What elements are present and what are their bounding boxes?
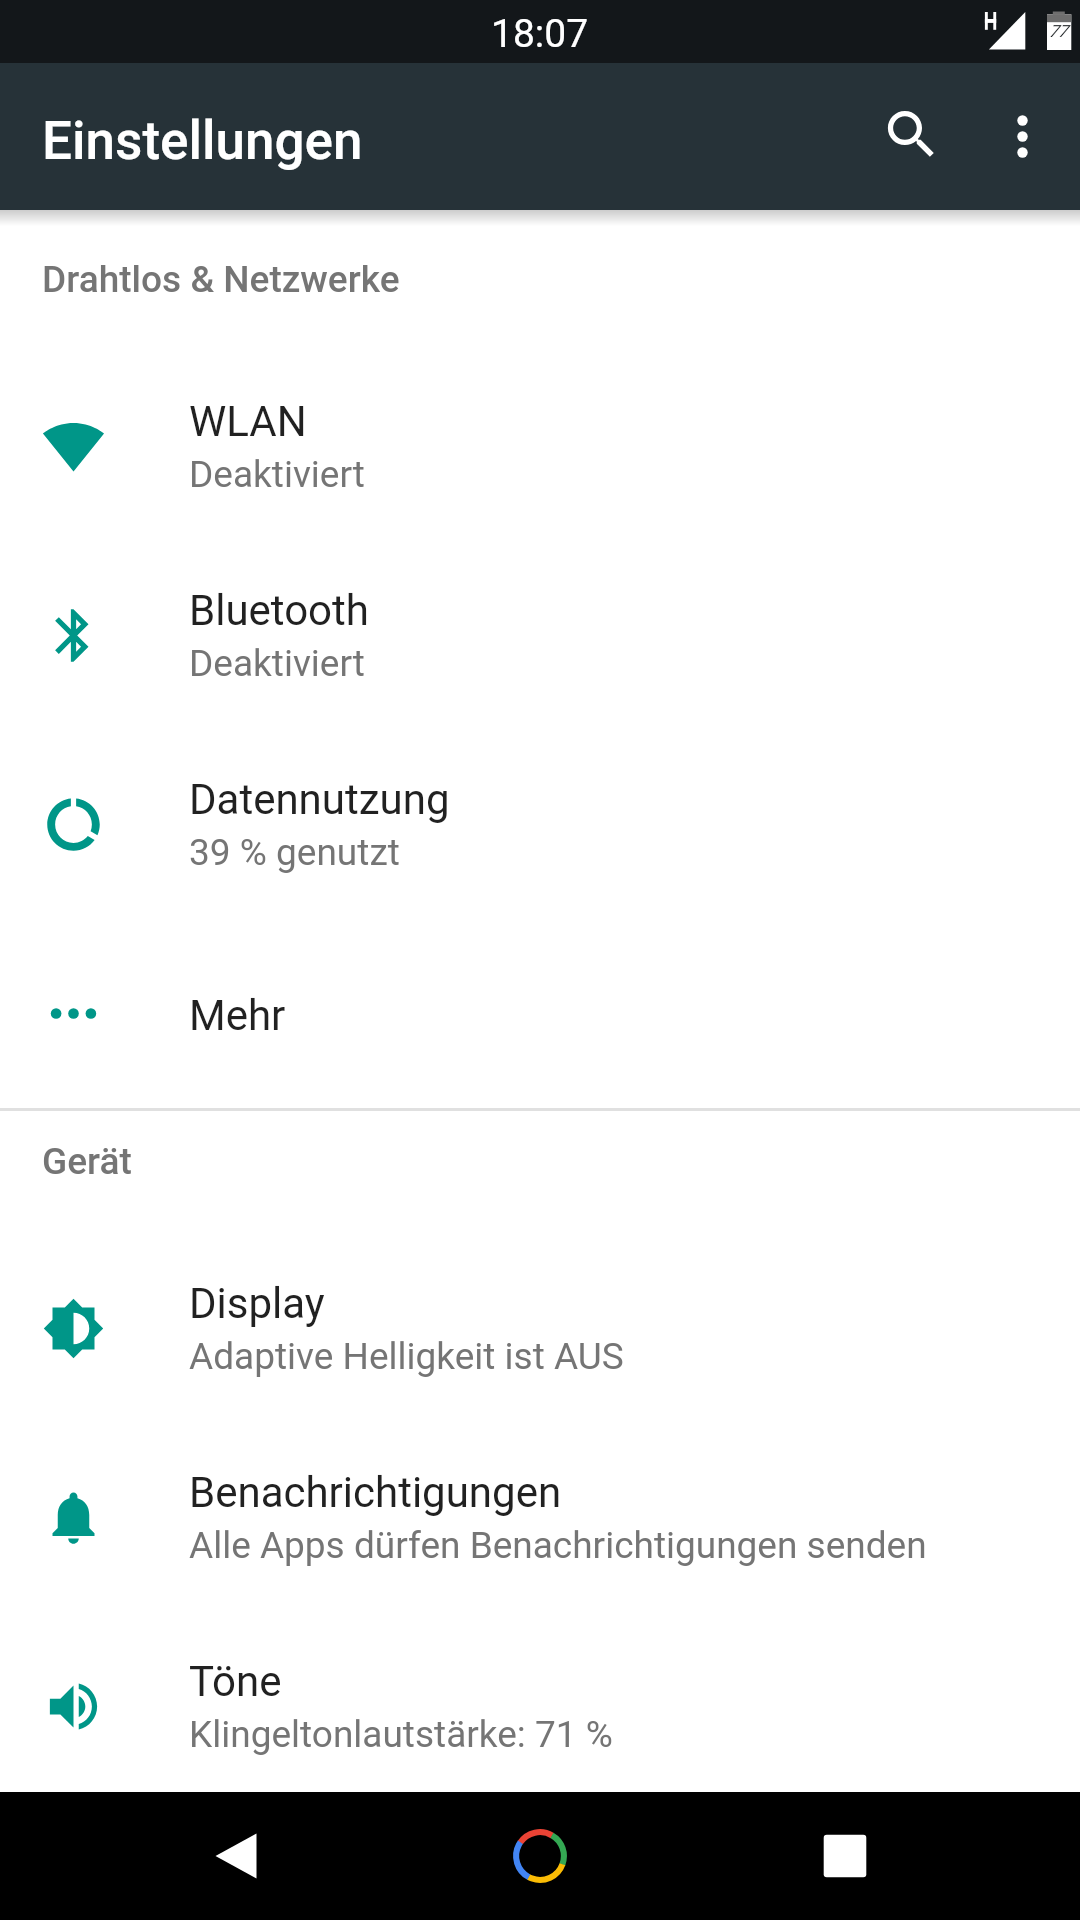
button[interactable]: Benachrichtigungen	[0, 1423, 1080, 1612]
button[interactable]: Suchen	[880, 103, 943, 166]
staticText: Datennutzung	[189, 775, 450, 824]
staticText: 39 % genutzt	[189, 831, 400, 874]
staticText: Display	[189, 1279, 325, 1328]
staticText: Deaktiviert	[189, 453, 365, 496]
staticText: WLAN	[189, 397, 307, 446]
staticText: Alle Apps dürfen Benachrichtigungen send…	[189, 1524, 927, 1567]
staticText: Deaktiviert	[189, 642, 365, 685]
button[interactable]: Datennutzung	[0, 730, 1080, 919]
staticText: Adaptive Helligkeit ist AUS	[189, 1335, 624, 1378]
staticText: Klingeltonlautstärke: 71 %	[189, 1713, 613, 1756]
button[interactable]: Display	[0, 1234, 1080, 1423]
button[interactable]: Mehr	[0, 919, 1080, 1108]
button[interactable]: Zurück	[173, 1792, 299, 1920]
button[interactable]: Startbildschirm	[477, 1792, 603, 1920]
staticText: Gerät	[42, 1140, 132, 1183]
staticText: 18:07	[491, 11, 589, 57]
staticText: Töne	[189, 1657, 282, 1706]
staticText: Einstellungen	[42, 110, 363, 172]
button[interactable]: Weitere Optionen	[991, 105, 1054, 168]
staticText: Bluetooth	[189, 586, 369, 635]
staticText: 77	[1049, 21, 1068, 41]
staticText: Drahtlos & Netzwerke	[42, 258, 400, 301]
button[interactable]: Töne	[0, 1612, 1080, 1792]
staticText: Mehr	[189, 991, 286, 1040]
staticText: Benachrichtigungen	[189, 1468, 562, 1517]
button[interactable]: WLAN	[0, 352, 1080, 541]
button[interactable]: Bluetooth	[0, 541, 1080, 730]
button[interactable]: Übersicht	[782, 1792, 908, 1920]
